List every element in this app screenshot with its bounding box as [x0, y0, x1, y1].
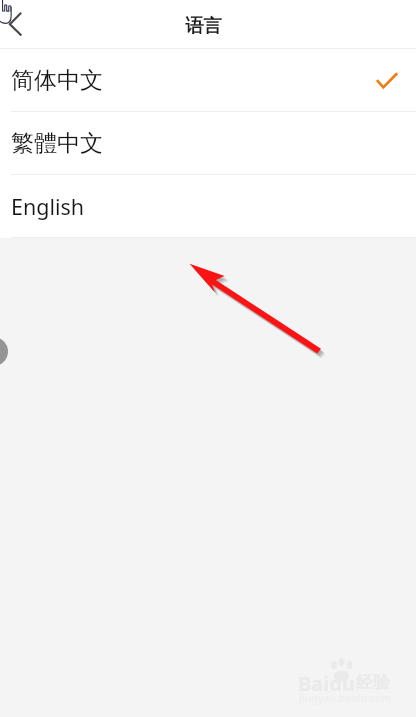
- staticText: 经验: [356, 672, 390, 693]
- staticText: 简体中文: [11, 66, 103, 95]
- button[interactable]: English: [0, 175, 416, 237]
- staticText: English: [11, 192, 85, 221]
- button[interactable]: 繁體中文: [0, 112, 416, 174]
- button[interactable]: 简体中文: [0, 49, 416, 111]
- staticText: 繁體中文: [11, 129, 103, 158]
- staticText: Baidu: [298, 670, 355, 697]
- button[interactable]: Assistive ball: [0, 337, 8, 366]
- staticText: 语言: [185, 14, 222, 37]
- button[interactable]: Back: [0, 3, 44, 47]
